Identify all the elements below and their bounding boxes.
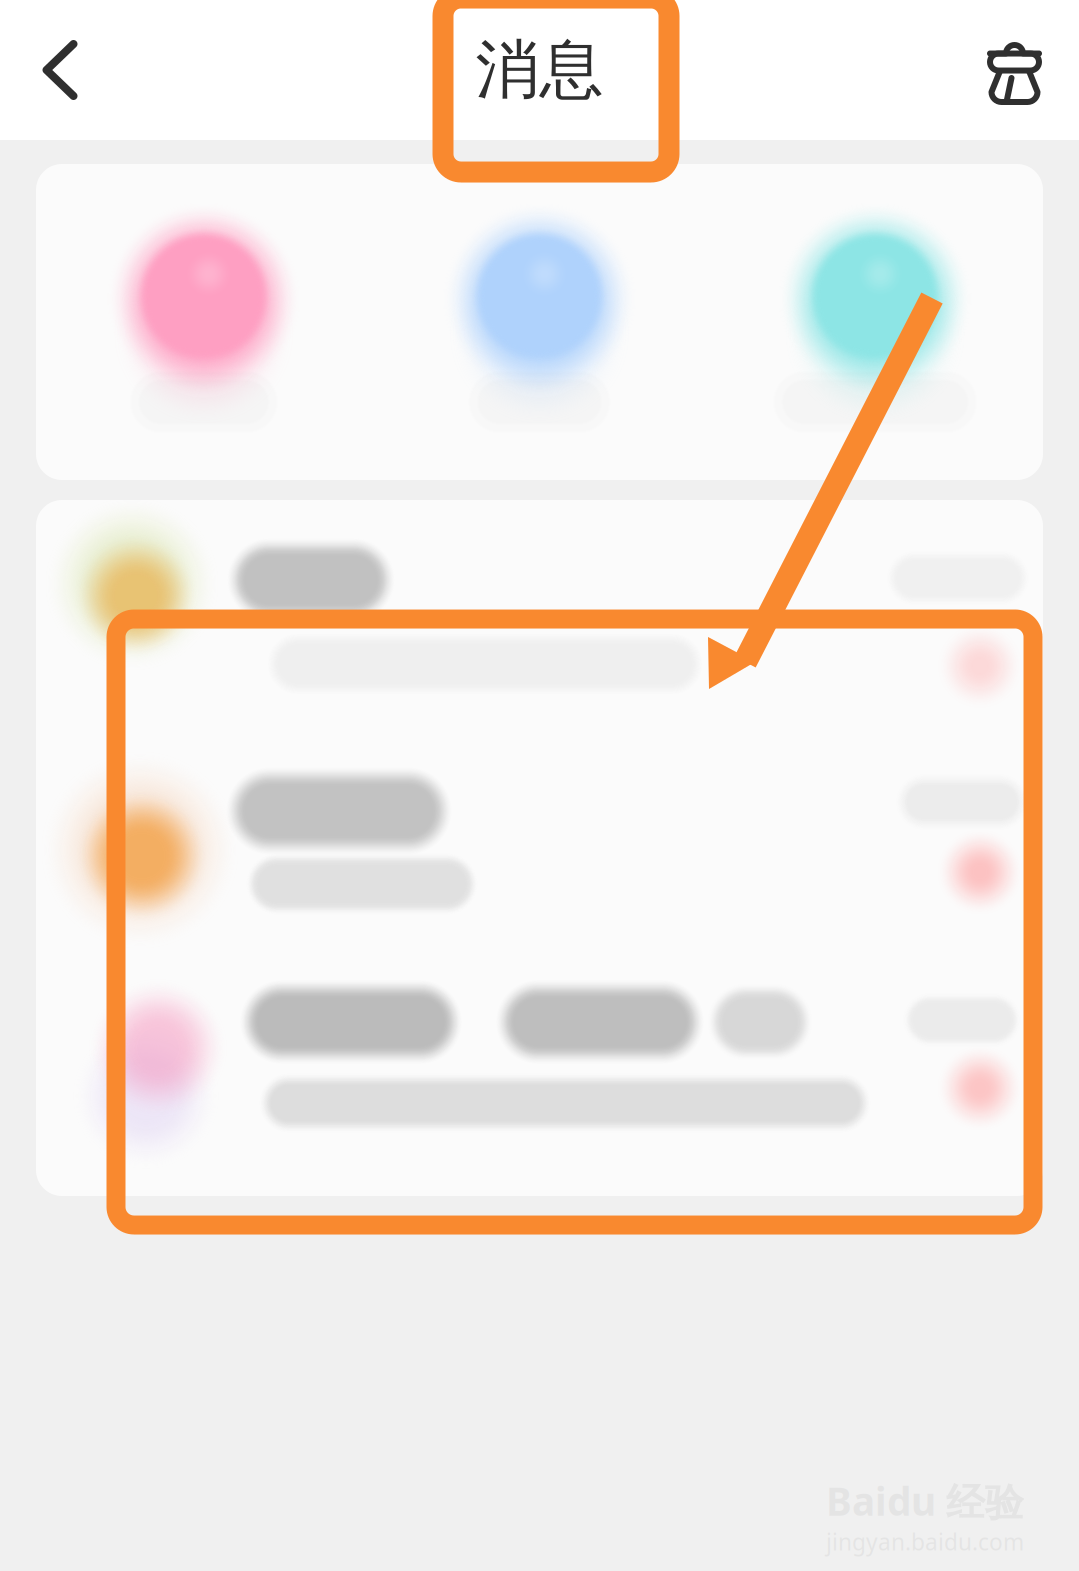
button[interactable] [36, 968, 1043, 1196]
staticText: 消息 [475, 31, 603, 109]
button[interactable] [707, 164, 1043, 480]
button[interactable] [36, 164, 372, 480]
button[interactable]: Clear all messages [951, 0, 1079, 140]
staticText: jingyan.baidu.com [826, 1526, 1024, 1557]
staticText: Baidu 经验 [826, 1475, 1024, 1526]
button[interactable]: Back [0, 0, 120, 140]
button[interactable] [36, 738, 1043, 968]
button[interactable] [36, 500, 1043, 738]
button[interactable] [372, 164, 707, 480]
